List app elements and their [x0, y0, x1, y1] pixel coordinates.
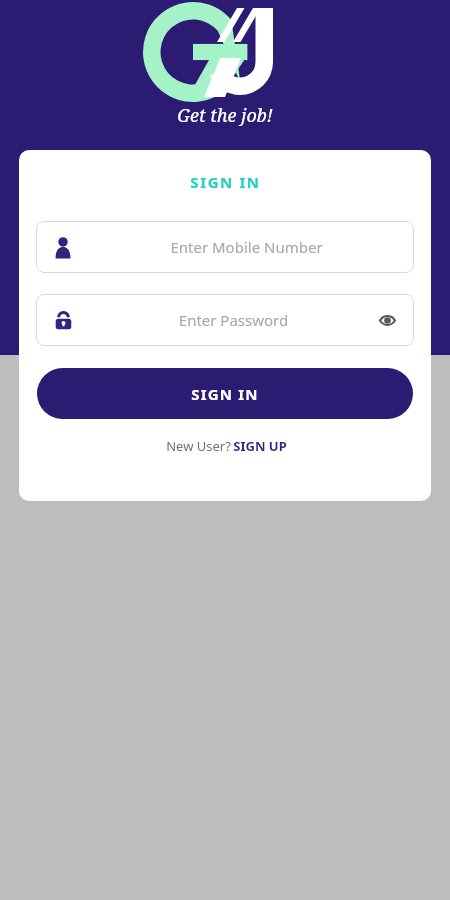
button[interactable]: Enter Password: [36, 294, 414, 346]
button[interactable]: SIGN IN: [37, 368, 413, 419]
staticText: Get the job!: [177, 103, 273, 128]
button[interactable]: New User?: [158, 435, 293, 457]
staticText: SIGN IN: [190, 172, 261, 192]
staticText: SIGN IN: [191, 384, 259, 404]
staticText: SIGN UP: [233, 437, 287, 455]
button[interactable]: Enter Mobile Number: [36, 221, 414, 273]
staticText: Enter Password: [93, 310, 374, 330]
staticText: New User?: [164, 437, 233, 455]
staticText: Enter Mobile Number: [93, 237, 400, 257]
button[interactable]: Show password: [374, 307, 400, 333]
